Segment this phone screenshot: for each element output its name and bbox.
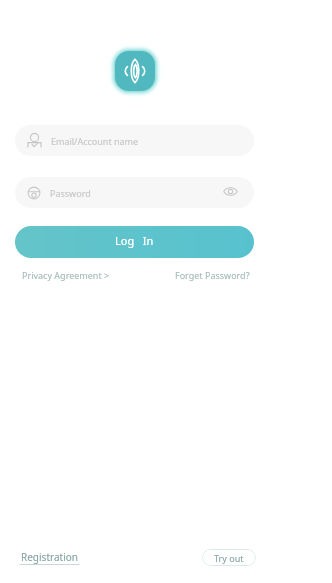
staticText: Email/Account name bbox=[51, 135, 139, 147]
staticText: Forget Password? bbox=[175, 269, 250, 281]
button[interactable]: Forget Password? bbox=[175, 269, 250, 281]
button[interactable]: Log In bbox=[15, 226, 254, 258]
staticText: Log In bbox=[115, 233, 154, 248]
staticText: Registration bbox=[21, 550, 78, 564]
button[interactable]: Registration bbox=[19, 548, 80, 568]
button[interactable]: Show password bbox=[223, 184, 238, 199]
button[interactable]: App logo bbox=[115, 51, 155, 91]
staticText: Privacy Agreement > bbox=[22, 269, 110, 281]
button[interactable]: Privacy Agreement > bbox=[22, 269, 110, 281]
button[interactable]: Password bbox=[15, 177, 254, 208]
staticText: Password bbox=[50, 187, 91, 199]
staticText: Try out bbox=[214, 552, 244, 564]
button[interactable]: Try out bbox=[202, 549, 256, 566]
button[interactable]: Email/Account name bbox=[15, 125, 254, 156]
